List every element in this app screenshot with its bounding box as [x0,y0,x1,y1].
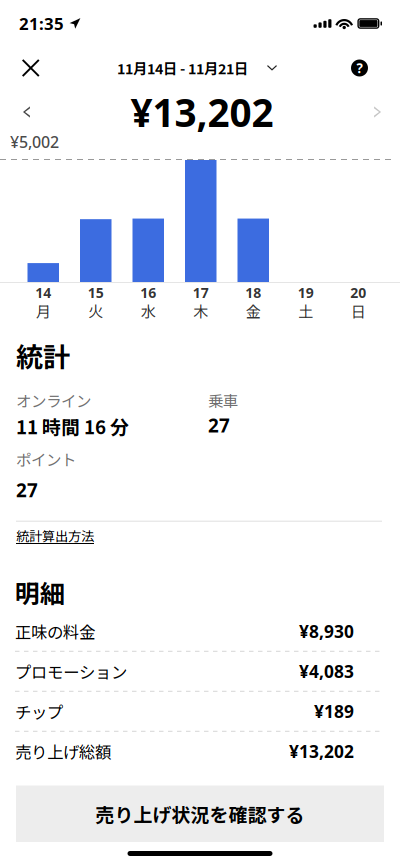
staticText: 火 [88,300,103,322]
staticText: 20 [350,283,366,302]
button[interactable]: 11月14日 - 11月21日 [109,47,285,89]
staticText: ¥189 [314,699,354,723]
staticText: 21:35 [19,12,64,35]
staticText: 金 [246,300,261,322]
staticText: 19 [298,283,314,302]
staticText: ¥13,202 [289,739,354,763]
staticText: 18 [245,283,261,302]
staticText: 乗車 [208,389,238,411]
staticText: 日 [351,300,366,322]
staticText: 月 [36,300,51,322]
staticText: 正味の料金 [15,619,95,643]
staticText: 16 [140,283,156,302]
staticText: 27 [208,412,230,438]
staticText: ポイント [16,448,76,470]
staticText: 15 [88,283,104,302]
staticText: 27 [16,477,38,503]
staticText: 水 [141,300,156,322]
staticText: ¥8,930 [299,619,354,643]
staticText: チップ [15,699,63,723]
staticText: 土 [298,300,313,322]
button[interactable]: 前の週 [0,89,46,135]
staticText: 11 時間 16 分 [16,412,129,440]
button[interactable]: ヘルプ [337,47,400,89]
staticText: ¥13,202 [130,86,273,138]
staticText: ? [356,59,362,77]
staticText: 14 [35,283,51,302]
button[interactable]: 売り上げ状況を確認する [0,785,400,842]
staticText: 11月14日 - 11月21日 [117,58,248,78]
staticText: 売り上げ総額 [15,739,111,763]
staticText: 統計算出方法 [16,526,94,545]
button[interactable]: 統計算出方法 [16,526,94,544]
staticText: ¥4,083 [299,659,354,683]
staticText: オンライン [16,389,91,411]
staticText: プロモーション [15,659,127,683]
staticText: 木 [193,300,208,322]
staticText: ¥5,002 [10,131,59,153]
staticText: 売り上げ状況を確認する [95,800,304,827]
staticText: 17 [193,283,209,302]
staticText: 統計 [16,336,70,375]
button[interactable]: 次の週 [358,89,400,135]
staticText: 明細 [15,574,65,610]
button[interactable]: 閉じる [0,47,53,89]
